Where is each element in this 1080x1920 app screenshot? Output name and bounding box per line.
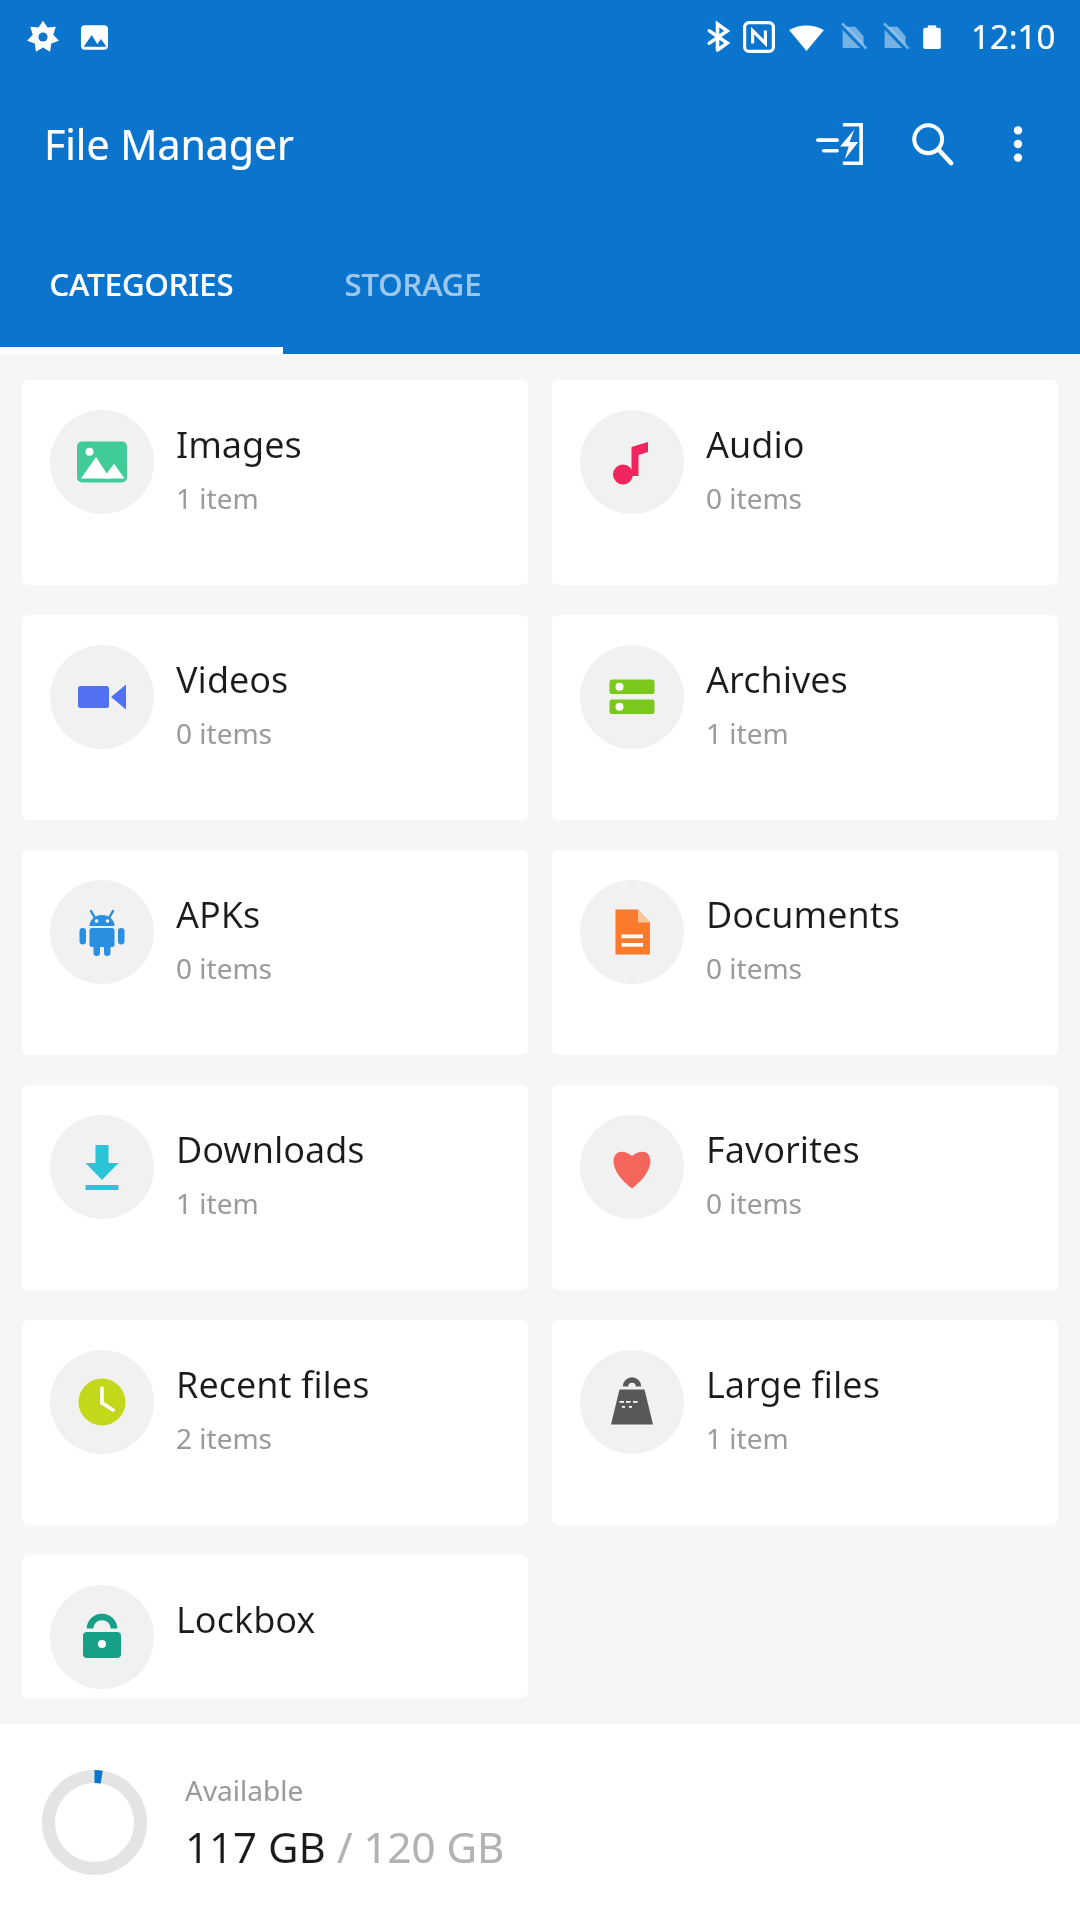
staticText: Images [176, 420, 302, 469]
button[interactable]: Recent files [22, 1320, 528, 1525]
button[interactable]: Audio [552, 380, 1058, 585]
staticText: Audio [706, 420, 805, 469]
staticText: 117 GB [185, 1818, 337, 1875]
button[interactable]: Search [886, 98, 978, 190]
staticText: File Manager [44, 116, 295, 172]
staticText: Recent files [176, 1360, 370, 1409]
button[interactable]: Images [22, 380, 528, 585]
button[interactable]: Downloads [22, 1085, 528, 1290]
button[interactable]: APKs [22, 850, 528, 1055]
staticText: Documents [706, 890, 901, 939]
staticText: / 120 GB [337, 1818, 505, 1875]
staticText: Available [185, 1771, 304, 1809]
button[interactable]: Favorites [552, 1085, 1058, 1290]
staticText: 1 item [706, 1419, 789, 1457]
button[interactable]: Archives [552, 615, 1058, 820]
staticText: 12:10 [971, 14, 1056, 59]
staticText: 1 item [176, 1184, 259, 1222]
staticText: APKs [176, 890, 261, 939]
staticText: 2 items [176, 1419, 273, 1457]
button[interactable]: Large files [552, 1320, 1058, 1525]
button[interactable]: Videos [22, 615, 528, 820]
staticText: CATEGORIES [49, 263, 234, 305]
staticText: 0 items [706, 1184, 803, 1222]
staticText: Lockbox [176, 1595, 316, 1644]
staticText: Downloads [176, 1125, 365, 1174]
staticText: 0 items [176, 949, 273, 987]
button[interactable]: Transfer files [794, 98, 886, 190]
staticText: 0 items [176, 714, 273, 752]
button[interactable]: Lockbox [22, 1555, 528, 1698]
staticText: Large files [706, 1360, 880, 1409]
button[interactable]: More options [978, 104, 1058, 184]
staticText: 0 items [706, 479, 803, 517]
staticText: Favorites [706, 1125, 860, 1174]
button[interactable]: Available [0, 1724, 1080, 1920]
staticText: 1 item [176, 479, 259, 517]
button[interactable]: CATEGORIES [0, 214, 283, 354]
staticText: STORAGE [344, 263, 482, 305]
staticText: 1 item [706, 714, 789, 752]
button[interactable]: STORAGE [283, 214, 543, 354]
staticText: Videos [176, 655, 289, 704]
button[interactable]: Documents [552, 850, 1058, 1055]
staticText: Archives [706, 655, 848, 704]
staticText: 0 items [706, 949, 803, 987]
